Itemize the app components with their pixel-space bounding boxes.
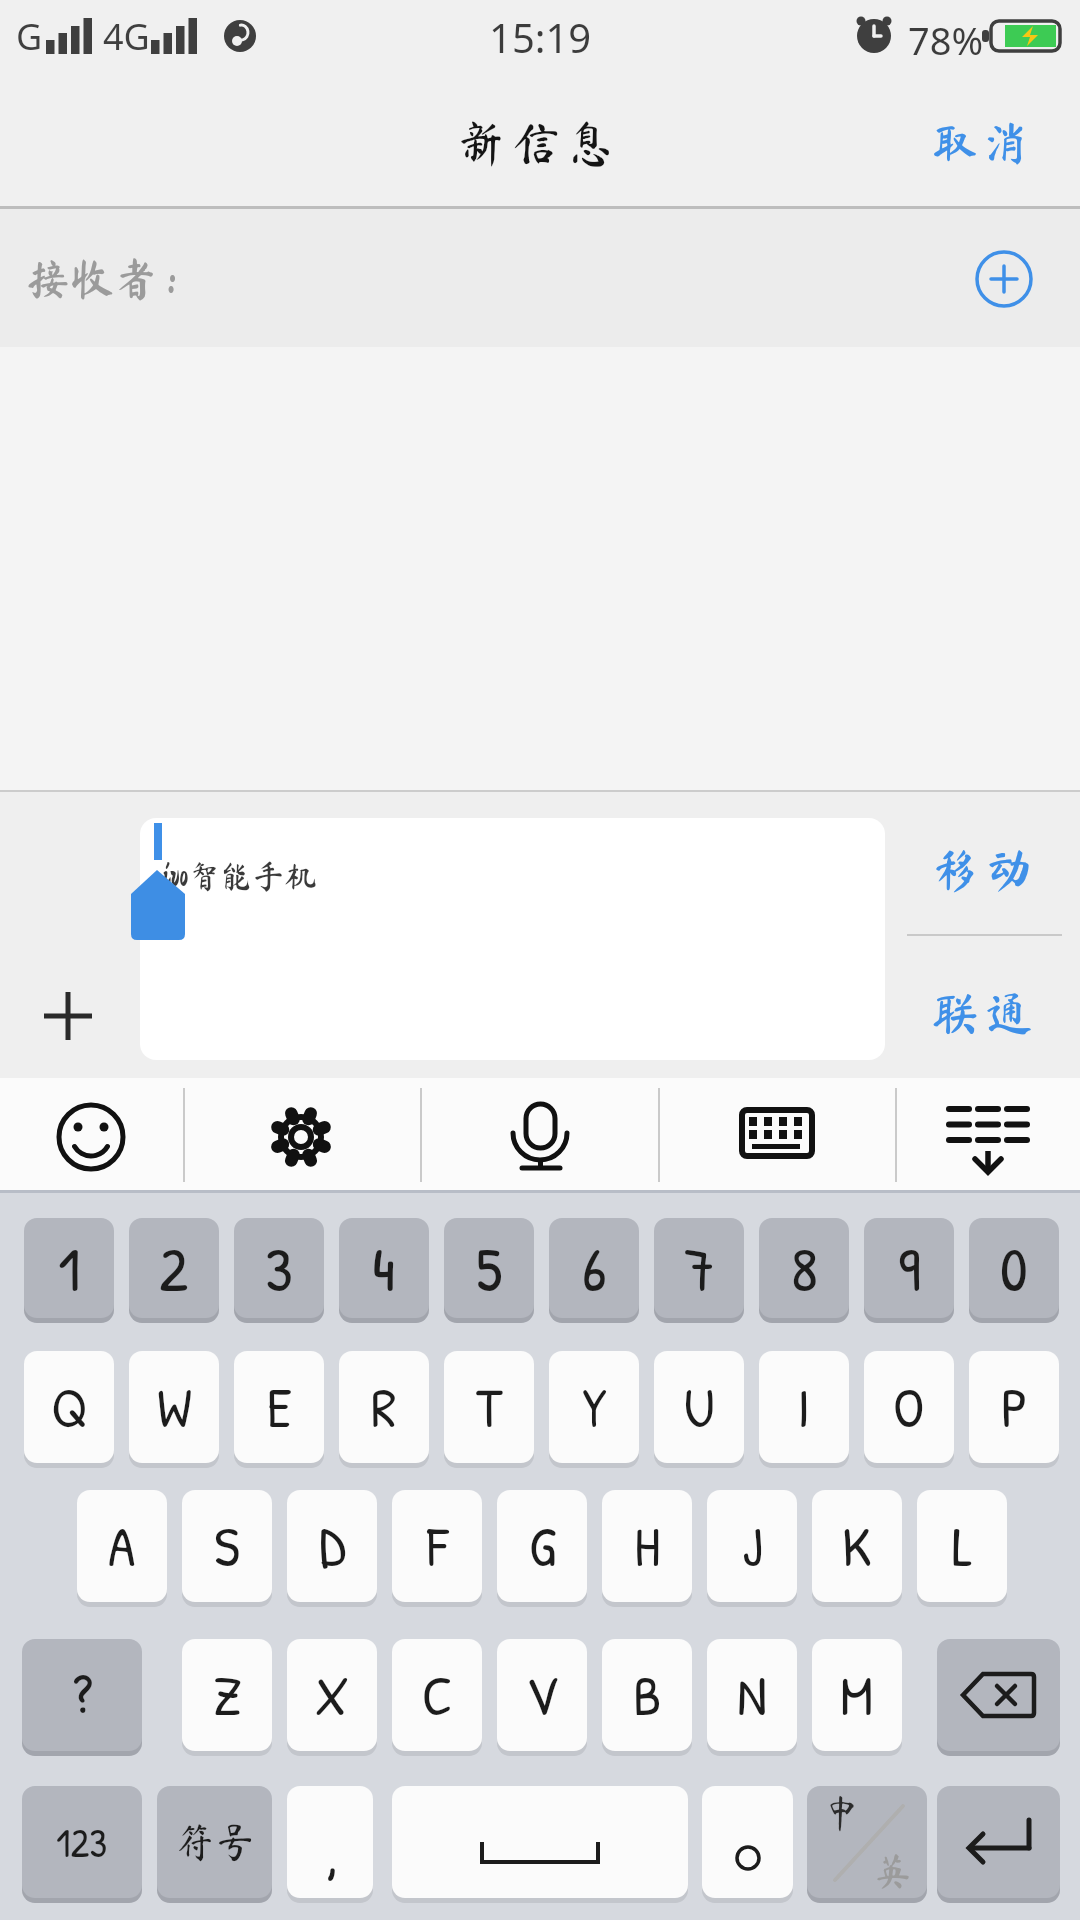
staticText: 新信息 [457,119,623,167]
staticText: I [797,1369,811,1445]
staticText: 123 [56,1815,108,1869]
button[interactable]: I [759,1351,849,1463]
button[interactable]: E [234,1351,324,1463]
button[interactable]: 7 [654,1218,744,1318]
staticText: C [422,1657,453,1733]
button[interactable]: 1 [24,1218,114,1318]
button[interactable] [937,1786,1060,1898]
button[interactable]: B [602,1639,692,1751]
staticText: 2 [159,1226,189,1310]
button[interactable]: L [917,1490,1007,1602]
button[interactable]: C [392,1639,482,1751]
staticText: ? [72,1657,93,1733]
button[interactable]: 5 [444,1218,534,1318]
staticText: 接收者 : [26,256,178,300]
button[interactable]: S [182,1490,272,1602]
button[interactable]: 8 [759,1218,849,1318]
staticText: 1 [58,1226,81,1310]
staticText: M [840,1657,874,1733]
button[interactable]: W [129,1351,219,1463]
staticText: R [371,1369,397,1445]
button[interactable]: 0 [969,1218,1059,1318]
button[interactable] [937,1639,1060,1751]
staticText: , [325,1806,339,1895]
staticText: H [634,1508,661,1584]
staticText: 0 [1000,1226,1028,1310]
button[interactable]: 接收者 : [0,209,1080,347]
button[interactable] [265,1101,337,1173]
button[interactable]: 中 [807,1786,927,1898]
button[interactable] [944,1103,1032,1173]
button[interactable]: P [969,1351,1059,1463]
button[interactable] [974,249,1034,309]
button[interactable]: ? [22,1639,142,1751]
button[interactable]: 4 [339,1218,429,1318]
staticText: 15:19 [489,10,592,62]
staticText: N [737,1657,767,1733]
staticText: F [427,1508,448,1584]
staticText: 6 [582,1226,607,1310]
button[interactable]: N [707,1639,797,1751]
button[interactable] [702,1786,793,1898]
button[interactable] [504,1104,576,1174]
staticText: 4 [372,1226,396,1310]
staticText: G [16,12,43,61]
button[interactable] [739,1107,815,1161]
button[interactable] [44,992,92,1040]
staticText: 4G [103,12,150,61]
staticText: W [157,1369,192,1445]
button[interactable]: X [287,1639,377,1751]
button[interactable]: 3 [234,1218,324,1318]
staticText: 7 [684,1226,715,1310]
button[interactable]: , [287,1786,373,1898]
button[interactable]: V [497,1639,587,1751]
staticText: 78% [908,14,984,66]
button[interactable]: Z [182,1639,272,1751]
button[interactable]: T [444,1351,534,1463]
button[interactable]: Y [549,1351,639,1463]
staticText: G [529,1508,556,1584]
staticText: J [742,1508,763,1584]
button[interactable]: R [339,1351,429,1463]
button[interactable]: 联通 [905,978,1065,1048]
button[interactable]: O [864,1351,954,1463]
button[interactable] [140,818,885,1060]
button[interactable]: G [497,1490,587,1602]
staticText: 联通 [931,989,1040,1037]
button[interactable]: 9 [864,1218,954,1318]
staticText: U [684,1369,715,1445]
staticText: 英 [874,1852,913,1890]
button[interactable]: K [812,1490,902,1602]
button[interactable]: Q [24,1351,114,1463]
button[interactable]: F [392,1490,482,1602]
button[interactable]: H [602,1490,692,1602]
staticText: 5 [476,1226,503,1310]
button[interactable]: D [287,1490,377,1602]
button[interactable]: A [77,1490,167,1602]
staticText: 3 [265,1226,293,1310]
staticText: P [1001,1369,1028,1445]
button[interactable]: 2 [129,1218,219,1318]
button[interactable]: 123 [22,1786,142,1898]
staticText: A [108,1508,136,1584]
staticText: ivo智能手机 [163,860,317,892]
button[interactable] [392,1786,688,1898]
button[interactable]: U [654,1351,744,1463]
staticText: 8 [791,1226,818,1310]
staticText: Z [213,1657,242,1733]
staticText: O [893,1369,925,1445]
button[interactable]: M [812,1639,902,1751]
staticText: X [315,1657,349,1733]
button[interactable]: 移动 [905,835,1065,905]
staticText: S [214,1508,240,1584]
button[interactable]: 6 [549,1218,639,1318]
staticText: B [633,1657,662,1733]
button[interactable]: 取消 [920,95,1040,190]
staticText: 符号 [175,1822,255,1862]
button[interactable]: 符号 [157,1786,272,1898]
staticText: 中 [823,1794,862,1832]
button[interactable] [55,1101,127,1173]
staticText: 9 [898,1226,921,1310]
staticText: D [319,1508,346,1584]
button[interactable]: J [707,1490,797,1602]
